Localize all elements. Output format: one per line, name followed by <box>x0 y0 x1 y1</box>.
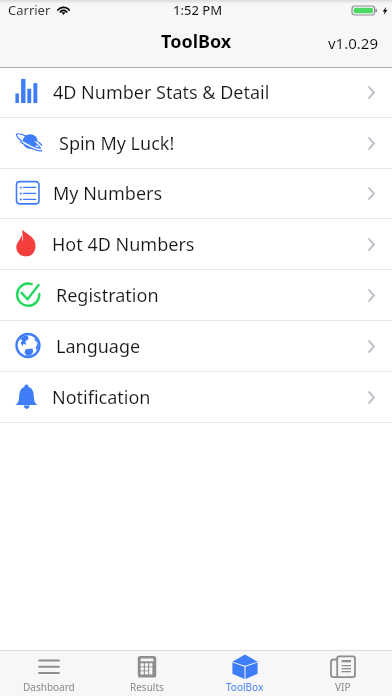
staticText: Results <box>130 680 164 694</box>
button[interactable]: 4D Number Stats & Detail <box>0 68 392 118</box>
staticText: 1:52 PM <box>173 1 223 19</box>
staticText: Notification <box>52 385 151 410</box>
button[interactable]: Spin My Luck! <box>0 118 392 169</box>
staticText: v1.0.29 <box>328 33 378 53</box>
button[interactable]: VIP <box>294 651 392 696</box>
staticText: ToolBox <box>226 680 264 694</box>
button[interactable]: Dashboard <box>0 651 98 696</box>
staticText: ToolBox <box>161 29 232 54</box>
button[interactable]: ToolBox <box>196 651 294 696</box>
button[interactable]: Language <box>0 321 392 372</box>
staticText: Spin My Luck! <box>59 131 175 156</box>
staticText: Language <box>56 334 141 359</box>
staticText: Dashboard <box>23 680 75 694</box>
button[interactable]: Hot 4D Numbers <box>0 219 392 270</box>
staticText: Carrier <box>8 1 51 19</box>
button[interactable]: Notification <box>0 372 392 423</box>
button[interactable]: Registration <box>0 270 392 321</box>
button[interactable]: Results <box>98 651 196 696</box>
staticText: Hot 4D Numbers <box>52 232 195 257</box>
staticText: 4D Number Stats & Detail <box>53 80 270 105</box>
button[interactable]: My Numbers <box>0 169 392 219</box>
staticText: VIP <box>335 680 351 694</box>
staticText: Registration <box>56 283 159 308</box>
staticText: My Numbers <box>53 181 163 206</box>
